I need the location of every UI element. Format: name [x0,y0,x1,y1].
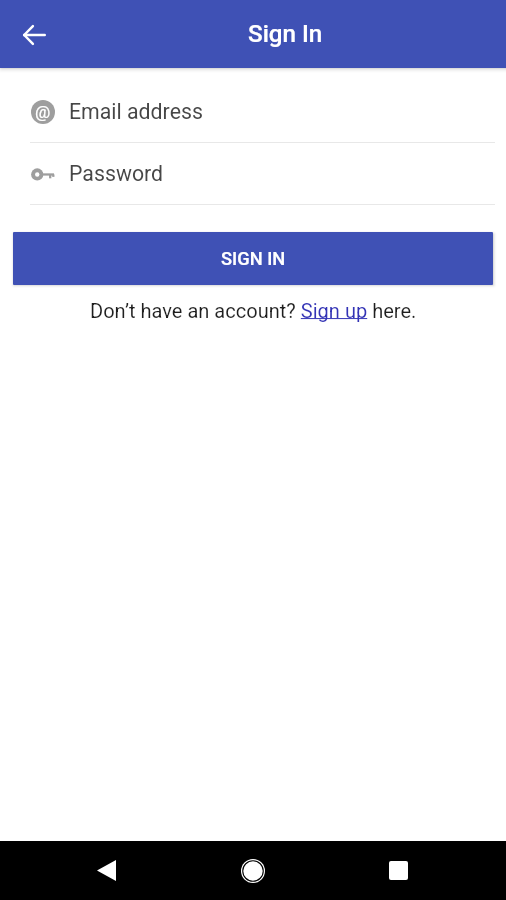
staticText: Password [69,161,164,186]
staticText: SIGN IN [221,248,286,269]
button[interactable]: @ [0,81,506,142]
button[interactable]: Recent apps [346,841,506,900]
button[interactable]: Password [0,143,506,204]
staticText: Email address [69,99,203,124]
button[interactable]: Home [160,841,346,900]
staticText: @ [35,102,51,122]
button[interactable]: Back [0,841,160,900]
staticText: Don’t have an account? Sign up here. [90,299,417,322]
button[interactable]: Back [0,2,64,66]
button[interactable]: SIGN IN [13,232,493,285]
staticText: Sign In [248,20,323,48]
